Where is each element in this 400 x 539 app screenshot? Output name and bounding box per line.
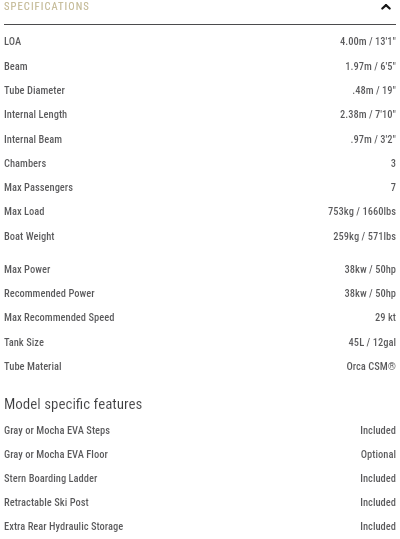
button[interactable]: Retractable Ski Post <box>0 490 400 514</box>
staticText: 259kg / 571lbs <box>61 230 396 242</box>
staticText: Gray or Mocha EVA Steps <box>4 424 111 436</box>
staticText: .97m / 3'2" <box>69 133 396 145</box>
staticText: 3 <box>53 157 396 169</box>
staticText: Max Power <box>4 263 51 275</box>
button[interactable]: Chambers <box>0 151 400 175</box>
button[interactable]: Extra Rear Hydraulic Storage <box>0 514 400 538</box>
button[interactable]: Beam <box>0 54 400 78</box>
staticText: Tank Size <box>4 336 44 348</box>
staticText: Included <box>130 520 396 532</box>
staticText: Stern Boarding Ladder <box>4 472 98 484</box>
staticText: Extra Rear Hydraulic Storage <box>4 520 124 532</box>
staticText: Max Load <box>4 205 45 217</box>
staticText: 29 kt <box>121 311 396 323</box>
staticText: Chambers <box>4 157 47 169</box>
staticText: 7 <box>80 181 396 193</box>
button[interactable]: Max Passengers <box>0 175 400 199</box>
staticText: Internal Beam <box>4 133 63 145</box>
staticText: Included <box>117 424 396 436</box>
staticText: 45L / 12gal <box>50 336 396 348</box>
button[interactable]: Internal Length <box>0 102 400 126</box>
button[interactable]: Max Load <box>0 199 400 223</box>
staticText: Included <box>95 496 396 508</box>
button[interactable]: Gray or Mocha EVA Steps <box>0 418 400 442</box>
button[interactable]: Gray or Mocha EVA Floor <box>0 442 400 466</box>
button[interactable]: Boat Weight <box>0 224 400 248</box>
staticText: Boat Weight <box>4 230 55 242</box>
staticText: .48m / 19" <box>71 84 396 96</box>
button[interactable]: Tube Diameter <box>0 78 400 102</box>
staticText: Tube Material <box>4 360 62 372</box>
staticText: Model specific features <box>4 395 143 413</box>
staticText: Optional <box>114 448 396 460</box>
staticText: 2.38m / 7'10" <box>74 108 396 120</box>
staticText: Max Recommended Speed <box>4 311 115 323</box>
staticText: Internal Length <box>4 108 68 120</box>
staticText: Tube Diameter <box>4 84 65 96</box>
button[interactable]: Max Power <box>0 257 400 281</box>
staticText: Retractable Ski Post <box>4 496 89 508</box>
staticText: Recommended Power <box>4 287 95 299</box>
button[interactable]: Tank Size <box>0 330 400 354</box>
staticText: 38kw / 50hp <box>101 287 396 299</box>
button[interactable]: SPECIFICATIONS <box>0 0 400 23</box>
staticText: 1.97m / 6'5" <box>34 60 396 72</box>
button[interactable]: Recommended Power <box>0 281 400 305</box>
staticText: 38kw / 50hp <box>57 263 396 275</box>
staticText: 753kg / 1660lbs <box>51 205 396 217</box>
staticText: SPECIFICATIONS <box>4 0 90 12</box>
staticText: Gray or Mocha EVA Floor <box>4 448 108 460</box>
button[interactable]: Stern Boarding Ladder <box>0 466 400 490</box>
staticText: LOA <box>4 35 22 47</box>
button[interactable]: Internal Beam <box>0 127 400 151</box>
staticText: Included <box>104 472 396 484</box>
button[interactable]: LOA <box>0 29 400 53</box>
staticText: Beam <box>4 60 28 72</box>
button[interactable]: Max Recommended Speed <box>0 305 400 329</box>
other: Collapse specifications <box>380 4 392 10</box>
staticText: Max Passengers <box>4 181 74 193</box>
staticText: Orca CSM® <box>68 360 396 372</box>
staticText: 4.00m / 13'1" <box>28 35 396 47</box>
button[interactable]: Tube Material <box>0 354 400 378</box>
